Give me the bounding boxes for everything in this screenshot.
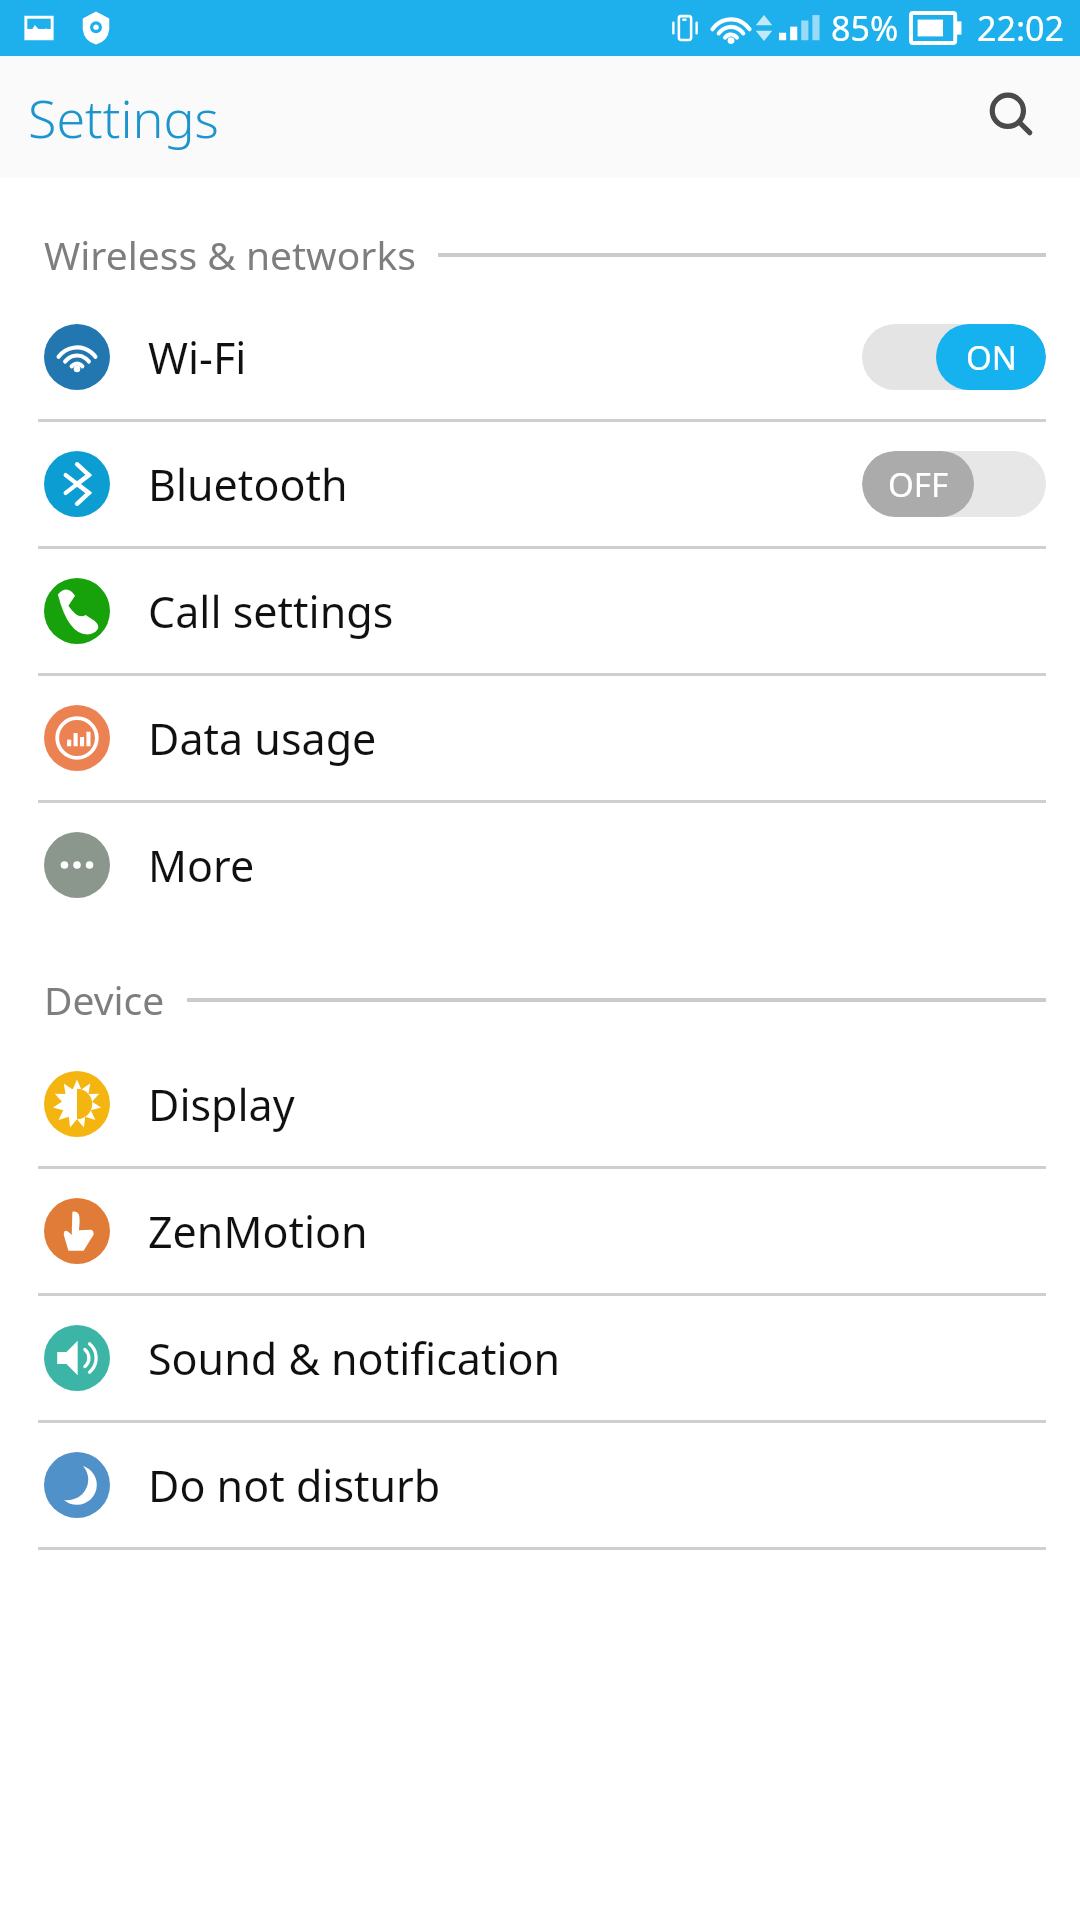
staticText: Wi-Fi [148,328,247,387]
staticText: Bluetooth [148,455,348,514]
staticText: More [148,836,255,895]
button[interactable]: Sound & notification [0,1296,1080,1420]
staticText: Call settings [148,582,394,641]
button[interactable]: Data usage [0,676,1080,800]
button[interactable]: Wi-Fi toggle on [862,324,1046,390]
staticText: Sound & notification [148,1329,561,1388]
button[interactable]: ZenMotion [0,1169,1080,1293]
button[interactable]: Call settings [0,549,1080,673]
staticText: OFF [888,462,949,507]
staticText: Data usage [148,709,377,768]
staticText: ON [966,335,1017,380]
button[interactable]: Bluetooth toggle off [862,451,1046,517]
staticText: Display [148,1075,295,1134]
staticText: Settings [28,82,219,153]
staticText: Wireless & networks [44,228,416,281]
staticText: 22:02 [977,5,1064,51]
button[interactable]: More [0,803,1080,927]
staticText: Do not disturb [148,1456,441,1515]
button[interactable]: Display [0,1042,1080,1166]
staticText: ZenMotion [148,1202,368,1261]
button[interactable]: Do not disturb [0,1423,1080,1547]
button[interactable]: Wi-Fi [0,295,1080,419]
staticText: Device [44,973,165,1026]
button[interactable]: Bluetooth [0,422,1080,546]
staticText: 85% [831,5,899,51]
button[interactable]: Search [970,75,1054,159]
